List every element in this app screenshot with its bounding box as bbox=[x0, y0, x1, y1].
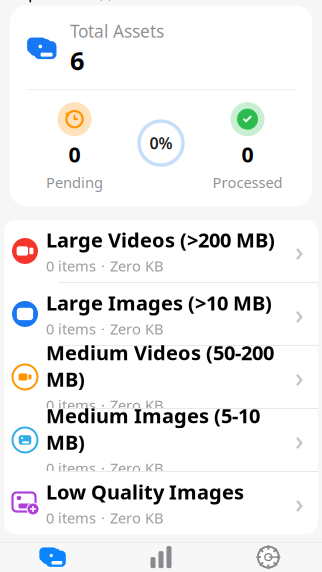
button[interactable]: Large Videos (>200 MB) bbox=[4, 220, 318, 283]
staticText: 0 items bbox=[46, 256, 96, 275]
staticText: Pending bbox=[46, 172, 103, 192]
staticText: Total Assets bbox=[70, 19, 164, 42]
staticText: Operador bbox=[14, 0, 94, 3]
staticText: 0 items bbox=[46, 458, 96, 478]
staticText: 0 bbox=[241, 140, 253, 168]
staticText: › bbox=[295, 422, 304, 458]
staticText: Low Quality Images bbox=[46, 478, 244, 505]
button[interactable]: Medium Images (5-10 MB) bbox=[4, 409, 318, 472]
staticText: · bbox=[101, 395, 105, 415]
button[interactable]: Settings bbox=[215, 544, 322, 572]
staticText: · bbox=[101, 458, 105, 478]
staticText: 6 bbox=[70, 43, 84, 77]
staticText: › bbox=[295, 359, 304, 395]
staticText: 0 bbox=[68, 140, 80, 168]
staticText: 0 items bbox=[46, 508, 96, 527]
staticText: › bbox=[295, 485, 304, 521]
staticText: Processed bbox=[212, 172, 282, 192]
button[interactable]: Media bbox=[0, 544, 107, 572]
button[interactable]: Stats bbox=[107, 544, 215, 572]
staticText: 0% bbox=[149, 132, 172, 154]
staticText: Medium Videos (50-200 MB) bbox=[46, 339, 274, 392]
staticText: › bbox=[295, 233, 304, 269]
staticText: Zero KB bbox=[110, 256, 164, 275]
button[interactable]: Medium Videos (50-200 MB) bbox=[4, 346, 318, 409]
staticText: 0 items bbox=[46, 319, 96, 338]
staticText: Large Videos (>200 MB) bbox=[46, 226, 275, 253]
staticText: 0 items bbox=[46, 395, 96, 415]
staticText: Zero KB bbox=[110, 319, 164, 338]
staticText: Zero KB bbox=[110, 508, 164, 527]
staticText: Large Images (>10 MB) bbox=[46, 289, 272, 316]
staticText: Medium Images (5-10 MB) bbox=[46, 402, 260, 455]
staticText: Zero KB bbox=[110, 458, 164, 478]
button[interactable]: Low Quality Images bbox=[4, 472, 318, 534]
staticText: · bbox=[101, 256, 105, 275]
staticText: · bbox=[101, 508, 105, 527]
button[interactable]: Large Images (>10 MB) bbox=[4, 283, 318, 346]
staticText: · bbox=[101, 319, 105, 338]
staticText: › bbox=[295, 296, 304, 332]
staticText: Zero KB bbox=[110, 395, 164, 415]
